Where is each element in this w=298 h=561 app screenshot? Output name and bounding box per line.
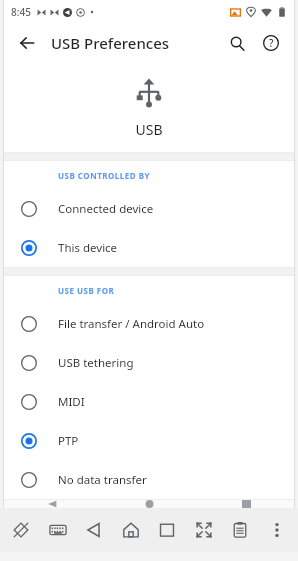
button[interactable]: USB tethering [3, 343, 295, 382]
button[interactable]: Home [101, 500, 198, 508]
button[interactable]: Recent apps [198, 500, 295, 508]
button[interactable]: Search [221, 27, 253, 59]
button[interactable]: More [262, 515, 292, 545]
staticText: ? [269, 36, 274, 50]
staticText: USB CONTROLLED BY [58, 170, 151, 181]
button[interactable]: File transfer / Android Auto [3, 304, 295, 343]
staticText: MIDI [58, 394, 85, 410]
button[interactable]: Home [116, 515, 146, 545]
button[interactable]: Clipboard [225, 515, 255, 545]
staticText: File transfer / Android Auto [58, 316, 205, 332]
button[interactable]: Help [255, 27, 287, 59]
button[interactable]: Back [79, 515, 109, 545]
button[interactable]: Keyboard [43, 515, 73, 545]
button[interactable]: Back [11, 27, 43, 59]
button[interactable]: MIDI [3, 382, 295, 421]
staticText: 8:45 [11, 5, 31, 19]
button[interactable]: No data transfer [3, 460, 295, 499]
staticText: Connected device [58, 201, 154, 217]
button[interactable]: Overview [152, 515, 182, 545]
staticText: USB [135, 120, 163, 139]
staticText: USB tethering [58, 355, 134, 371]
staticText: USB Preferences [51, 33, 170, 53]
button[interactable]: Rotate [6, 515, 36, 545]
staticText: No data transfer [58, 472, 147, 488]
button[interactable]: This device [3, 228, 295, 267]
staticText: This device [58, 240, 118, 256]
button[interactable]: PTP [3, 421, 295, 460]
staticText: USE USB FOR [58, 285, 115, 296]
button[interactable]: Back [3, 500, 101, 508]
staticText: PTP [58, 433, 79, 449]
button[interactable]: Fullscreen [189, 515, 219, 545]
button[interactable]: Connected device [3, 189, 295, 228]
